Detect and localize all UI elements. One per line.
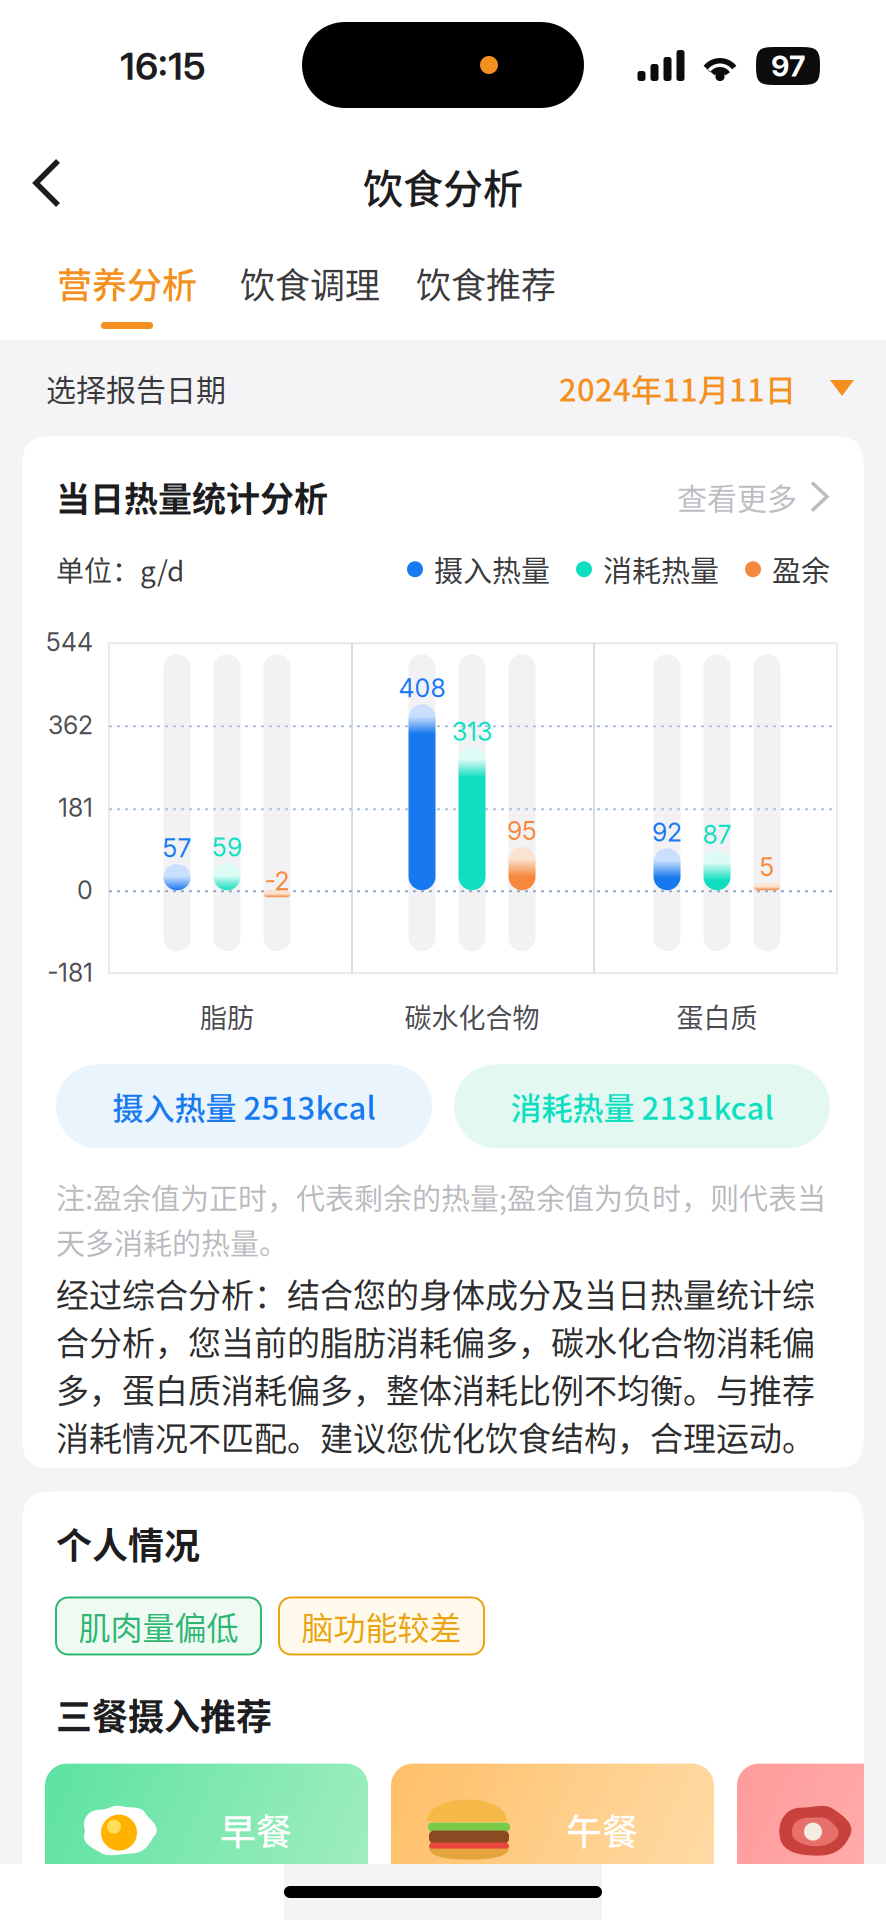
staticText: 87 [702,819,731,850]
staticText: 碳水化合物 [404,997,539,1036]
staticText: 57 [162,833,191,863]
staticText: 92 [652,817,682,847]
staticText: 脑功能较差 [301,1603,461,1649]
staticText: 97 [771,48,805,84]
staticText: 313 [452,716,492,747]
staticText: 单位：g/d [56,549,184,589]
staticText: 饮食分析 [363,157,523,215]
button[interactable]: 返回 [13,140,81,226]
staticText: 362 [48,710,93,740]
button[interactable]: 午餐 [391,1764,714,1904]
staticText: 经过综合分析：结合您的身体成分及当日热量统计综合分析，您当前的脂肪消耗偏多，碳水… [56,1269,815,1460]
staticText: 三餐摄入推荐 [56,1688,272,1741]
staticText: 544 [46,627,93,657]
button[interactable]: 饮食调理 [220,258,400,329]
staticText: 2024年11月11日 [559,366,796,410]
button[interactable]: 查看更多 [677,475,830,518]
staticText: 摄入热量 [434,548,550,590]
staticText: 蛋白质 [676,997,757,1036]
staticText: 181 [58,793,93,823]
button[interactable]: 饮食推荐 [396,258,576,329]
staticText: 注:盈余值为正时，代表剩余的热量;盈余值为负时，则代表当天多消耗的热量。 [56,1176,826,1263]
staticText: 午餐 [566,1803,638,1856]
staticText: 消耗热量 [603,548,719,590]
staticText: 饮食调理 [240,258,380,308]
button[interactable]: 晚餐 [737,1764,886,1904]
button[interactable]: 营养分析 [37,258,217,329]
staticText: 脂肪 [200,997,254,1036]
staticText: 59 [212,832,242,862]
staticText: 当日热量统计分析 [56,472,328,521]
staticText: -2 [264,866,289,896]
staticText: 95 [507,816,537,846]
staticText: 个人情况 [56,1517,200,1569]
button[interactable]: 2024年11月11日 [559,366,854,410]
staticText: 盈余 [772,548,830,590]
staticText: 0 [77,875,93,905]
staticText: 选择报告日期 [46,366,226,410]
staticText: 摄入热量 2513kcal [112,1084,375,1129]
staticText: 早餐 [220,1803,292,1856]
staticText: 查看更多 [677,475,797,518]
staticText: 饮食推荐 [416,258,556,308]
button[interactable]: 早餐 [45,1764,368,1904]
staticText: 消耗热量 2131kcal [510,1084,773,1129]
staticText: 肌肉量偏低 [78,1603,238,1649]
staticText: 16:15 [120,43,206,89]
staticText: 408 [398,673,445,703]
staticText: -181 [47,958,93,988]
staticText: 5 [759,852,774,882]
staticText: 营养分析 [57,258,197,308]
